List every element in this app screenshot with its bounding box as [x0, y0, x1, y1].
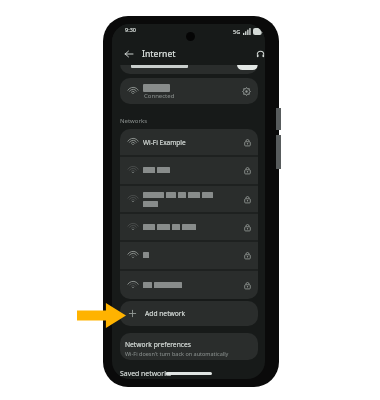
button[interactable] [120, 271, 258, 299]
button[interactable]: Network preferences [120, 333, 258, 360]
staticText: Wi-Fi doesn't turn back on automatically [125, 350, 229, 357]
staticText: Add network [145, 309, 186, 318]
button[interactable]: Saved networks [120, 367, 200, 379]
button[interactable] [120, 242, 258, 268]
staticText: Network preferences [125, 340, 191, 349]
button[interactable]: Connected [120, 78, 258, 104]
button[interactable]: Back [122, 47, 136, 61]
button[interactable]: Wi-Fi Example [120, 129, 258, 155]
staticText: Wi-Fi Example [143, 138, 186, 147]
button[interactable] [120, 157, 258, 183]
staticText: Saved networks [120, 369, 172, 378]
button[interactable] [120, 186, 258, 212]
button[interactable]: Help and feedback [253, 47, 265, 61]
staticText: 5G [233, 28, 241, 35]
button[interactable] [120, 214, 258, 240]
staticText: Connected [144, 92, 175, 100]
staticText: 9:30 [125, 26, 136, 33]
staticText: Networks [120, 117, 148, 125]
staticText: Internet [142, 48, 176, 60]
button[interactable]: Add network [120, 301, 258, 326]
button[interactable]: Network settings [240, 85, 253, 98]
button[interactable] [120, 41, 258, 74]
